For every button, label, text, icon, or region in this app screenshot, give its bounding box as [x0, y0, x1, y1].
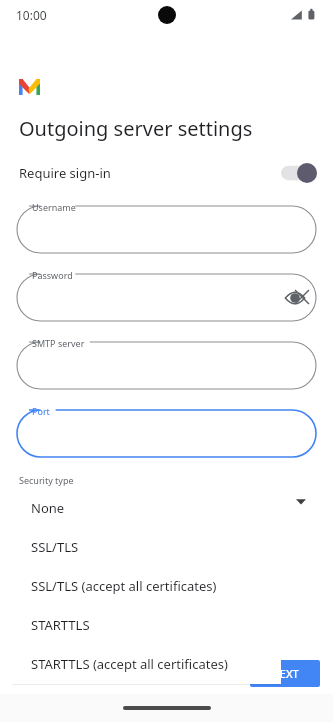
staticText: STARTTLS (accept all certificates)	[31, 655, 228, 673]
staticText: Require sign-in	[19, 164, 111, 182]
button[interactable]: SSL/TLS (accept all certificates)	[12, 566, 281, 605]
staticText: 10:00	[16, 7, 47, 23]
button[interactable]: SMTP server	[17, 342, 316, 389]
button[interactable]: Show password	[284, 287, 306, 309]
staticText: None	[31, 499, 65, 517]
staticText: SMTP server	[32, 337, 85, 349]
staticText: SSL/TLS (accept all certificates)	[31, 577, 217, 595]
staticText: Security type	[19, 474, 74, 486]
button[interactable]: SSL/TLS	[12, 527, 281, 566]
staticText: Password	[32, 269, 73, 281]
button[interactable]: NEXT	[250, 660, 320, 687]
button[interactable]: Clear password	[291, 286, 313, 308]
button[interactable]: STARTTLS (accept all certificates)	[12, 644, 281, 683]
button[interactable]: Password	[17, 274, 316, 321]
button[interactable]: Open security type dropdown	[292, 492, 310, 510]
staticText: Port	[32, 405, 50, 417]
button[interactable]: Require sign-in	[0, 156, 333, 190]
staticText: Username	[32, 201, 76, 213]
staticText: STARTTLS	[31, 616, 90, 634]
staticText: SSL/TLS	[31, 538, 79, 556]
staticText: Outgoing server settings	[19, 115, 253, 142]
staticText: NEXT	[271, 666, 299, 681]
button[interactable]: Port	[17, 410, 316, 457]
button[interactable]: Username	[17, 206, 316, 253]
button[interactable]: None	[12, 488, 281, 527]
button[interactable]: STARTTLS	[12, 605, 281, 644]
